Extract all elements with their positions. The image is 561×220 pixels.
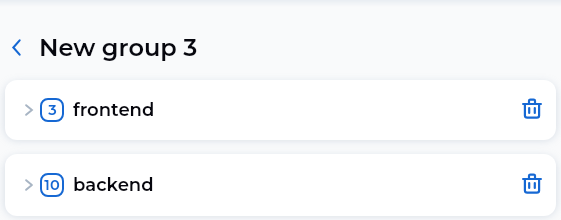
staticText: backend: [73, 174, 154, 196]
staticText: 10: [44, 176, 60, 194]
button[interactable]: 10: [5, 154, 556, 216]
staticText: frontend: [73, 99, 155, 121]
staticText: New group 3: [39, 33, 198, 62]
button[interactable]: Back: [2, 33, 30, 61]
button[interactable]: 3: [5, 80, 556, 140]
button[interactable]: Delete: [514, 92, 550, 128]
staticText: 3: [48, 101, 57, 119]
button[interactable]: Delete: [514, 167, 550, 203]
